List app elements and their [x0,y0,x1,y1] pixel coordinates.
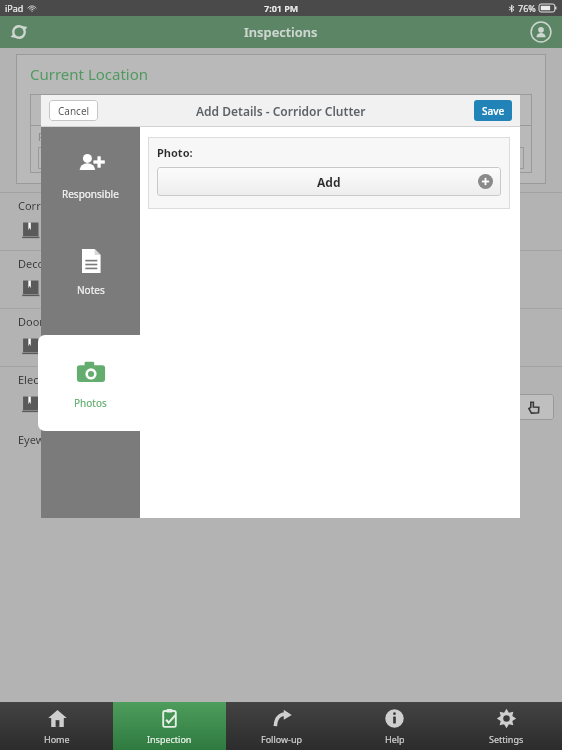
button[interactable]: Safety and Health * [289,147,524,169]
staticText: Responsible [62,187,119,201]
button[interactable]: Photos [38,335,142,431]
button[interactable]: Notes [41,223,140,319]
staticText: Notes [77,283,105,297]
staticText: Add Details - Corridor Clutter [196,103,366,119]
staticText: Floor 1 [324,103,357,117]
button[interactable]: Home [0,702,113,750]
staticText: 7:01 PM [264,2,299,14]
staticText: Current Location [30,64,149,84]
staticText: Save [482,104,505,118]
button[interactable]: Settings [450,702,562,750]
staticText: › [241,103,250,117]
staticText: Eyewash/Shower - Condition & Accessibili… [18,432,241,447]
staticText: Decorations [18,256,81,271]
staticText: Home [44,733,70,745]
staticText: 76% [518,2,536,14]
staticText: 1 Corridor [134,152,178,164]
staticText: Help [385,733,405,745]
button[interactable]: Inspection [113,702,226,750]
button[interactable]: Follow-up [226,702,338,750]
staticText: Room: [38,130,69,144]
staticText: Photo: [157,145,193,160]
button[interactable]: Add [157,167,501,196]
staticText: Due Date [69,379,113,393]
staticText: iPad [5,2,24,14]
button[interactable]: 1 Corridor [38,147,273,169]
button[interactable]: Cancel [49,100,98,121]
button[interactable]: Account [528,19,554,45]
staticText: Electrical Panel Access [18,372,133,387]
staticText: Add [317,174,341,190]
staticText: Photos [74,396,107,410]
staticText: Inspection Type: [289,130,366,144]
staticText: › [315,103,324,117]
staticText: Cancel [58,104,90,118]
staticText: Doors - Condition [18,314,109,329]
staticText: Inspections [244,23,318,41]
button[interactable]: Sync [6,19,32,45]
staticText: Main Campus [176,103,241,117]
button[interactable]: Sign [514,394,554,420]
button[interactable]: Save [474,100,512,121]
staticText: Follow-up [261,733,303,745]
button[interactable]: Help [338,702,450,750]
button[interactable]: Due Date [41,319,140,415]
staticText: Corridor Clutter [18,198,100,213]
button[interactable]: Responsible [41,127,140,223]
staticText: Settings [489,733,524,745]
staticText: Main Building [250,103,315,117]
staticText: Inspection [147,733,192,745]
staticText: › [357,103,366,117]
